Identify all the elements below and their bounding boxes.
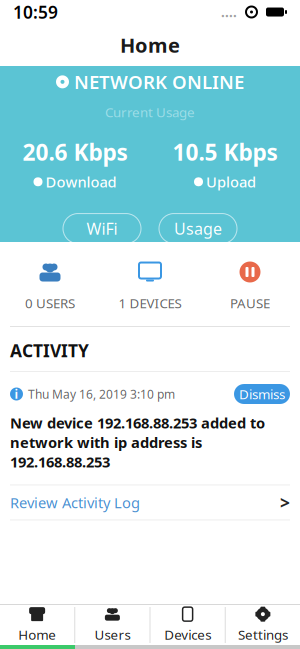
staticText: ACTIVITY: [10, 339, 89, 362]
button[interactable]: WiFi: [63, 213, 141, 243]
staticText: NETWORK ONLINE: [74, 69, 244, 94]
staticText: New device 192.168.88.253 added to netwo…: [10, 413, 265, 471]
button[interactable]: Devices: [150, 605, 225, 645]
staticText: Review Activity Log: [10, 493, 140, 512]
button[interactable]: Dismiss: [234, 384, 290, 404]
button[interactable]: Review Activity Log: [0, 485, 300, 519]
staticText: Home: [18, 626, 56, 643]
staticText: 10:59: [13, 0, 58, 23]
staticText: 0 USERS: [25, 294, 75, 312]
staticText: 20.6 Kbps: [22, 137, 127, 167]
button[interactable]: Usage: [159, 213, 237, 243]
staticText: 1 DEVICES: [118, 294, 181, 312]
staticText: Dismiss: [239, 385, 285, 403]
staticText: Users: [94, 626, 130, 643]
button[interactable]: 0 USERS: [0, 242, 100, 326]
staticText: Thu May 16, 2019 3:10 pm: [28, 386, 175, 402]
staticText: i: [14, 386, 18, 402]
button[interactable]: Users: [75, 605, 149, 645]
button[interactable]: Home: [0, 605, 74, 645]
staticText: Current Usage: [105, 103, 195, 121]
staticText: Download: [45, 172, 116, 192]
button[interactable]: Settings: [226, 605, 300, 645]
staticText: Usage: [174, 218, 222, 239]
staticText: Home: [120, 32, 180, 58]
staticText: PAUSE: [230, 294, 270, 312]
button[interactable]: PAUSE: [200, 242, 300, 326]
staticText: 10.5 Kbps: [172, 137, 277, 167]
staticText: Settings: [238, 626, 288, 643]
staticText: Devices: [164, 626, 211, 643]
staticText: WiFi: [86, 218, 117, 239]
staticText: Upload: [206, 172, 256, 192]
button[interactable]: 1 DEVICES: [100, 242, 200, 326]
staticText: ....: [221, 3, 237, 21]
staticText: >: [280, 491, 290, 514]
